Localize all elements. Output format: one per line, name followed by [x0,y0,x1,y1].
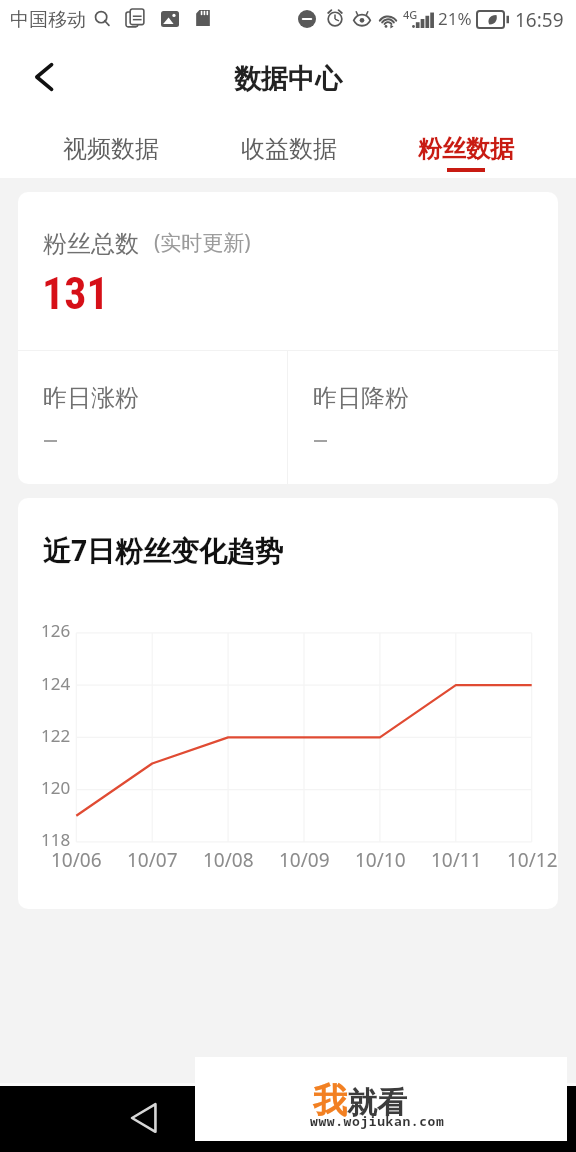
button[interactable]: 昨日降粉 [288,351,558,484]
staticText: 我 [313,1079,347,1122]
staticText: 昨日涨粉 [43,383,139,413]
staticText: 10/06 [51,847,102,873]
staticText: 数据中心 [234,62,342,96]
staticText: 118 [41,828,71,851]
staticText: 就看 [347,1084,407,1122]
button[interactable]: Back [116,1090,172,1146]
staticText: 10/07 [127,847,178,873]
staticText: 10/12 [507,847,558,873]
staticText: 昨日降粉 [313,383,409,413]
button[interactable]: 视频数据 [22,134,200,190]
staticText: 粉丝数据 [418,134,514,164]
button[interactable]: 昨日涨粉 [18,351,287,484]
staticText: (实时更新) [154,228,251,257]
staticText: 4G [403,7,418,22]
staticText: 124 [41,672,71,695]
staticText: 122 [41,724,71,747]
staticText: 16:59 [515,7,564,33]
staticText: 视频数据 [63,134,159,164]
staticText: 近7日粉丝变化趋势 [43,531,284,569]
staticText: 中国移动 [10,8,86,32]
staticText: 120 [41,776,71,799]
button[interactable]: 粉丝数据 [377,134,554,190]
staticText: 粉丝总数 [43,229,139,259]
staticText: www.wojiukan.com [310,1112,445,1130]
staticText: 10/10 [355,847,406,873]
staticText: 126 [41,619,71,642]
staticText: 10/08 [203,847,254,873]
staticText: 21% [438,7,472,30]
button[interactable]: 粉丝总数 [18,192,558,350]
staticText: 131 [42,268,109,320]
staticText: 10/09 [279,847,330,873]
button[interactable]: 收益数据 [200,134,377,190]
staticText: 收益数据 [241,134,337,164]
button[interactable]: Back [18,51,70,103]
staticText: 10/11 [431,847,482,873]
